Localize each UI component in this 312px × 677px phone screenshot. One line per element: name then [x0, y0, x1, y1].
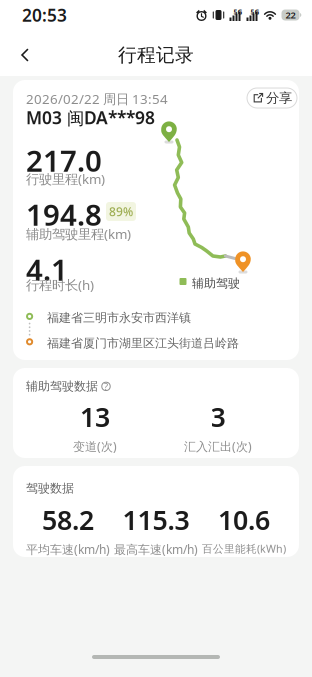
button[interactable]: Back — [0, 40, 30, 69]
staticText: 驾驶数据 — [26, 481, 74, 496]
staticText: 平均车速(km/h) — [26, 541, 110, 557]
staticText: M03 闽DA***98 — [26, 106, 155, 129]
staticText: 福建省三明市永安市西洋镇 — [47, 310, 191, 325]
staticText: 分享 — [266, 90, 292, 106]
staticText: 辅助驾驶 — [192, 276, 240, 291]
staticText: 汇入汇出(次) — [184, 438, 252, 454]
staticText: 10.6 — [218, 502, 270, 537]
staticText: 辅助驾驶里程(km) — [26, 225, 131, 243]
staticText: 辅助驾驶数据 — [26, 379, 98, 394]
staticText: 4.1 — [26, 250, 68, 289]
staticText: 22 — [285, 9, 295, 21]
staticText: 行程记录 — [118, 43, 194, 66]
staticText: ? — [104, 380, 108, 393]
staticText: 13 — [80, 399, 110, 434]
staticText: 20:53 — [22, 3, 67, 26]
staticText: 行程时长(h) — [26, 276, 94, 294]
staticText: 217.0 — [26, 141, 102, 180]
staticText: 福建省厦门市湖里区江头街道吕岭路 — [47, 336, 239, 351]
staticText: 最高车速(km/h) — [114, 541, 198, 557]
staticText: 58.2 — [42, 502, 94, 537]
staticText: 115.3 — [122, 502, 189, 537]
staticText: 变道(次) — [73, 438, 117, 454]
staticText: 行驶里程(km) — [26, 170, 105, 188]
staticText: 5G — [233, 7, 242, 16]
staticText: 89% — [109, 203, 133, 219]
staticText: 3 — [210, 399, 225, 434]
staticText: 百公里能耗(kWh) — [202, 541, 286, 556]
staticText: 5G — [250, 7, 259, 16]
button[interactable]: Help — [101, 381, 111, 391]
button[interactable]: 分享 — [247, 88, 297, 108]
staticText: 194.8 — [26, 195, 102, 234]
staticText: 2026/02/22 周日 13:54 — [26, 90, 168, 108]
